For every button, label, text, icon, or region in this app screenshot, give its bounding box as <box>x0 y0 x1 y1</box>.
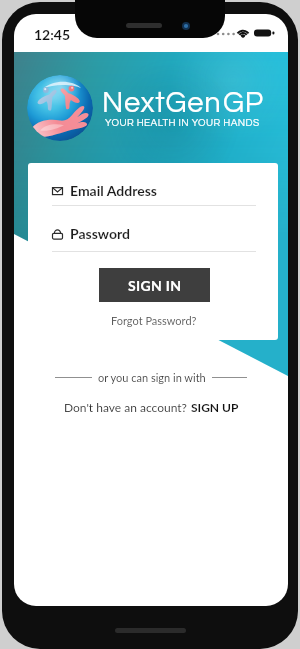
button[interactable]: SIGN UP <box>191 400 239 414</box>
staticText: Don't have an account? <box>64 400 191 414</box>
button[interactable]: SIGN IN <box>99 268 210 302</box>
staticText: Forgot Password? <box>111 314 197 327</box>
staticText: YOUR HEALTH IN YOUR HANDS <box>105 118 260 128</box>
staticText: GP <box>223 88 264 118</box>
staticText: NextGen <box>102 88 222 118</box>
button[interactable]: Password <box>52 225 256 252</box>
button[interactable]: Email Address <box>52 182 256 206</box>
staticText: 12:45 <box>34 26 71 43</box>
staticText: Password <box>70 225 130 242</box>
button[interactable]: Forgot Password? <box>111 314 197 327</box>
staticText: SIGN IN <box>128 277 182 294</box>
staticText: Email Address <box>70 182 157 199</box>
staticText: SIGN UP <box>191 400 239 414</box>
staticText: or you can sign in with <box>98 371 206 384</box>
